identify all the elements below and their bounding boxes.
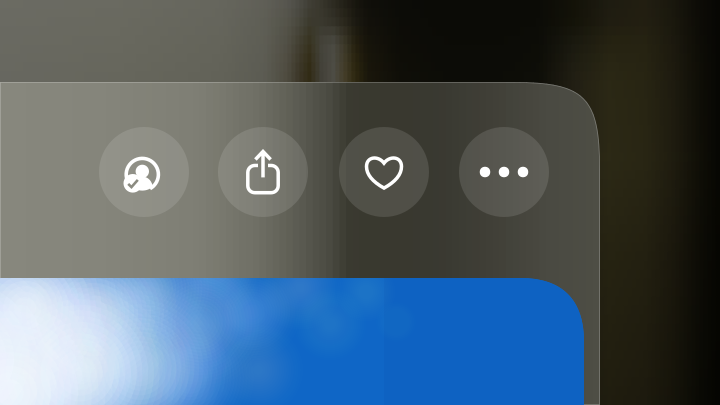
button[interactable]: More	[459, 127, 549, 217]
button[interactable]: Share	[218, 127, 308, 217]
button[interactable]: Favorite	[339, 127, 429, 217]
button[interactable]: Add person	[99, 127, 189, 217]
